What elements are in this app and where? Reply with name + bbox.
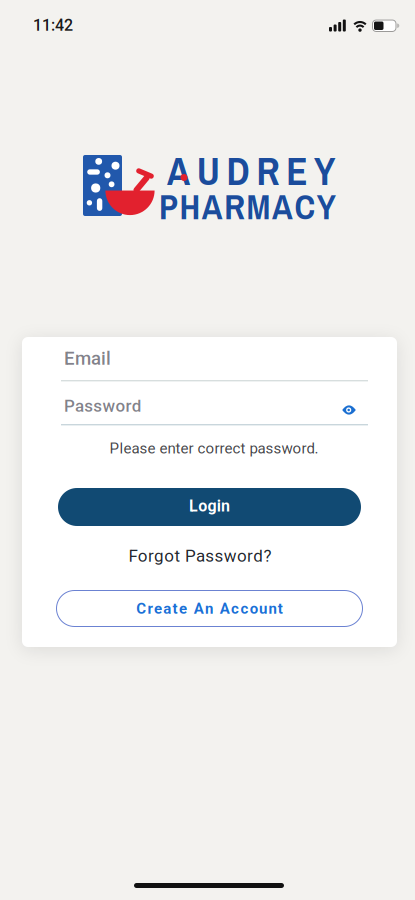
staticText: D	[227, 144, 250, 197]
staticText: A	[202, 183, 223, 230]
staticText: H	[179, 183, 200, 230]
button[interactable]: Login	[58, 488, 361, 526]
staticText: Create An Account	[136, 600, 283, 617]
staticText: Password	[64, 396, 142, 416]
button[interactable]: Show password	[342, 405, 356, 415]
staticText: Please enter correct password.	[109, 439, 318, 457]
staticText: A	[272, 183, 293, 230]
staticText: U	[197, 144, 220, 197]
staticText: C	[294, 183, 315, 230]
button[interactable]: Create An Account	[56, 590, 363, 627]
staticText: P	[159, 183, 178, 230]
staticText: M	[247, 183, 271, 230]
staticText: R	[224, 183, 245, 230]
button[interactable]: Forgot Password?	[128, 546, 271, 566]
staticText: 11:42	[33, 16, 73, 35]
staticText: A	[167, 144, 190, 197]
staticText: E	[286, 144, 307, 197]
staticText: R	[256, 144, 279, 197]
staticText: Y	[317, 183, 336, 230]
staticText: Login	[189, 497, 230, 515]
staticText: Email	[64, 347, 111, 369]
staticText: Forgot Password?	[128, 546, 271, 566]
staticText: Y	[314, 144, 335, 197]
